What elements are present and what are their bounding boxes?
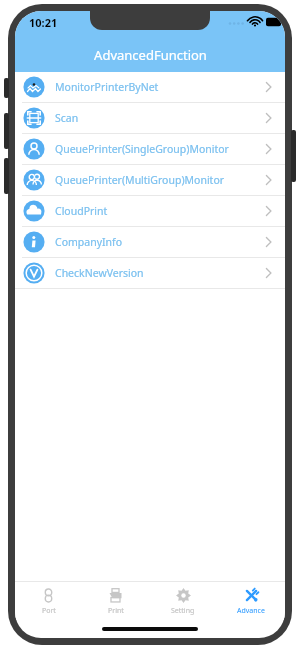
button[interactable]: Advance [217,582,285,620]
staticText: AdvancedFunction [94,46,207,64]
staticText: CompanyInfo [55,235,263,249]
staticText: Advance [237,606,265,616]
staticText: CloudPrint [55,204,263,218]
staticText: CheckNewVersion [55,266,263,280]
button[interactable]: Port [15,582,82,620]
button[interactable]: CompanyInfo [15,227,285,257]
staticText: Port [42,606,56,616]
button[interactable]: Print [82,582,149,620]
button[interactable]: QueuePrinter(MultiGroup)Monitor [15,165,285,195]
button[interactable]: Scan [15,103,285,133]
button[interactable]: CloudPrint [15,196,285,226]
staticText: QueuePrinter(MultiGroup)Monitor [55,173,263,187]
staticText: Print [108,606,124,616]
button[interactable]: QueuePrinter(SingleGroup)Monitor [15,134,285,164]
button[interactable]: CheckNewVersion [15,258,285,288]
staticText: 10:21 [29,15,58,30]
staticText: Setting [171,606,195,616]
staticText: QueuePrinter(SingleGroup)Monitor [55,142,263,156]
staticText: Scan [55,111,263,125]
button[interactable]: Setting [149,582,217,620]
button[interactable]: MonitorPrinterByNet [15,72,285,102]
staticText: MonitorPrinterByNet [55,80,263,94]
